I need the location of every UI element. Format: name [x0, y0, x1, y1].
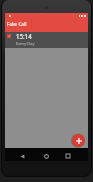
button[interactable]: Home [41, 151, 51, 161]
staticText: Fake Call [7, 21, 27, 27]
button[interactable]: Add [72, 134, 85, 147]
button[interactable]: Recents [63, 151, 73, 161]
button[interactable]: Back [17, 151, 27, 161]
staticText: 15:14 [16, 32, 32, 40]
button[interactable]: 15:14 [5, 32, 88, 48]
staticText: Every Day [16, 41, 35, 46]
